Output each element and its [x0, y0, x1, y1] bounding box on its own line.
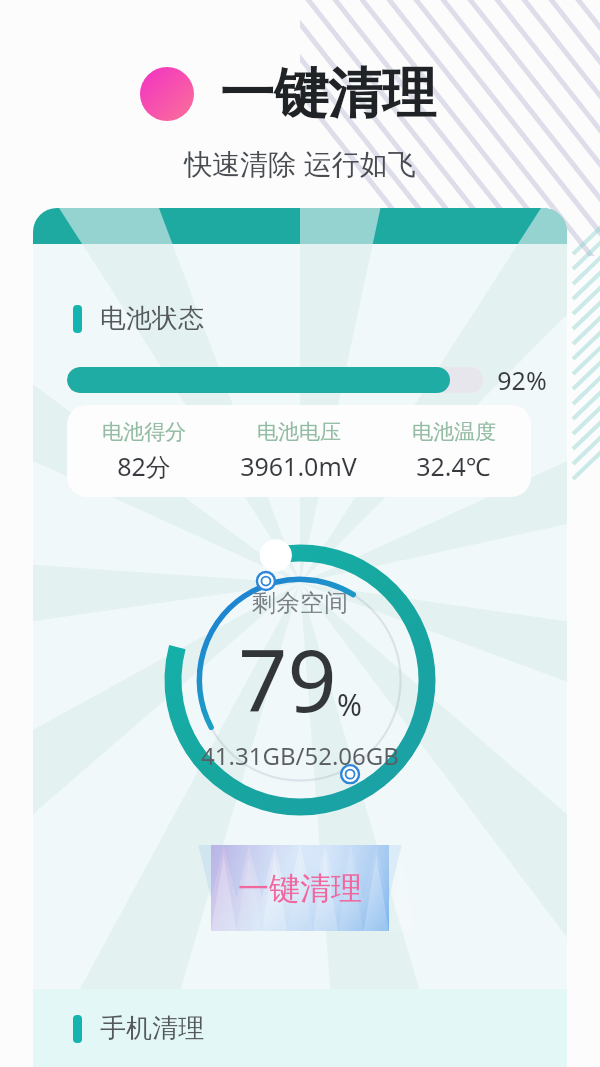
staticText: 32.4℃	[416, 449, 491, 483]
button[interactable]: 一键清理	[211, 845, 389, 931]
staticText: 82分	[117, 449, 171, 483]
staticText: 剩余空间	[252, 588, 348, 618]
staticText: 41.31GB/52.06GB	[201, 739, 399, 772]
staticText: 电池温度	[412, 419, 496, 445]
staticText: 一键清理	[238, 869, 362, 908]
staticText: 手机清理	[100, 1012, 204, 1045]
staticText: 3961.0mV	[240, 449, 357, 483]
staticText: 电池电压	[257, 419, 341, 445]
button[interactable]: 手机清理	[33, 989, 567, 1067]
staticText: 电池状态	[100, 302, 204, 335]
staticText: 一键清理	[220, 60, 436, 128]
staticText: 92%	[497, 363, 547, 397]
staticText: 电池得分	[102, 419, 186, 445]
staticText: 快速清除 运行如飞	[184, 144, 416, 182]
staticText: %	[337, 684, 362, 725]
staticText: 79	[238, 620, 337, 737]
